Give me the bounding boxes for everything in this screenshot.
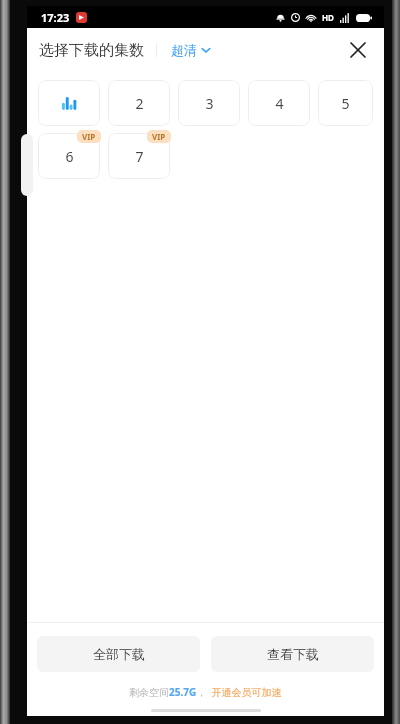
staticText: VIP <box>82 131 96 142</box>
button[interactable]: 查看下载 <box>211 636 374 672</box>
button[interactable]: 超清 <box>169 38 213 62</box>
staticText: 4 <box>275 94 284 113</box>
staticText: 剩余空间25.7G， 开通会员可加速 <box>129 685 282 699</box>
button[interactable]: 5 <box>318 80 373 126</box>
button[interactable]: 7 <box>108 133 170 179</box>
staticText: VIP <box>152 131 166 142</box>
staticText: 17:23 <box>41 10 70 25</box>
button[interactable]: 3 <box>178 80 240 126</box>
staticText: 3 <box>205 94 214 113</box>
staticText: 5 <box>341 94 350 113</box>
staticText: 7 <box>135 147 144 166</box>
staticText: 2 <box>135 94 144 113</box>
button[interactable]: 2 <box>108 80 170 126</box>
staticText: HD <box>322 12 334 23</box>
staticText: 6 <box>65 147 74 166</box>
button[interactable]: 6 <box>38 133 100 179</box>
button[interactable]: 正在播放第1集 <box>38 80 100 126</box>
button[interactable]: 全部下载 <box>37 636 200 672</box>
staticText: 选择下载的集数 <box>39 41 144 60</box>
staticText: 超清 <box>171 42 197 58</box>
button[interactable]: 关闭 <box>342 34 374 66</box>
staticText: 查看下载 <box>267 646 319 662</box>
button[interactable]: 4 <box>248 80 310 126</box>
staticText: 全部下载 <box>93 646 145 662</box>
